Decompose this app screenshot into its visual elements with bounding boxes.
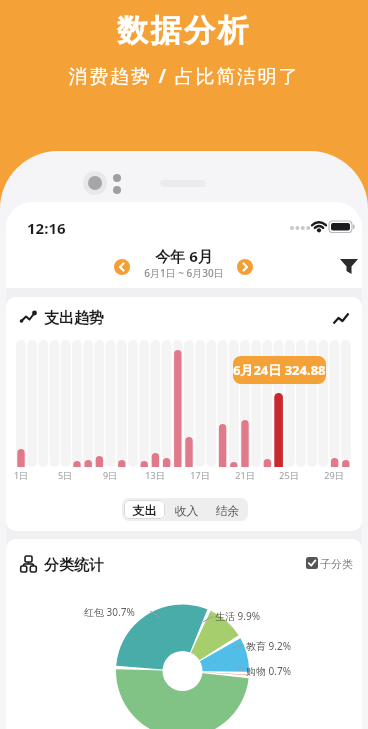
staticText: 消费趋势 / 占比简洁明了 <box>0 63 368 89</box>
staticText: 21日 <box>231 469 259 481</box>
staticText: 12:16 <box>27 218 87 238</box>
button[interactable] <box>124 500 165 519</box>
staticText: 分类统计 <box>44 556 164 575</box>
staticText: 6月1日 ~ 6月30日 <box>0 266 368 280</box>
staticText: 25日 <box>275 469 303 481</box>
staticText: 13日 <box>141 469 169 481</box>
staticText: 29日 <box>320 469 348 481</box>
button[interactable] <box>207 498 248 521</box>
button[interactable] <box>114 259 130 275</box>
staticText: 17日 <box>186 469 214 481</box>
staticText: 教育 9.2% <box>246 639 310 653</box>
staticText: 5日 <box>51 469 79 481</box>
staticText: 9日 <box>96 469 124 481</box>
button[interactable] <box>166 498 207 521</box>
staticText: 红包 30.7% <box>84 605 148 619</box>
staticText: 1日 <box>7 469 35 481</box>
button[interactable] <box>337 254 361 278</box>
staticText: 生活 9.9% <box>215 609 279 623</box>
button[interactable] <box>304 555 358 571</box>
staticText: 今年 6月 <box>0 246 368 266</box>
button[interactable] <box>237 259 253 275</box>
staticText: 收入 <box>166 503 207 518</box>
staticText: 支出趋势 <box>44 309 164 328</box>
staticText: 6月24日 324.88 <box>233 361 326 379</box>
staticText: 购物 0.7% <box>246 664 310 678</box>
staticText: 子分类 <box>320 557 360 571</box>
staticText: 支出 <box>124 503 165 518</box>
staticText: 数据分析 <box>0 11 368 50</box>
staticText: 结余 <box>207 503 248 518</box>
